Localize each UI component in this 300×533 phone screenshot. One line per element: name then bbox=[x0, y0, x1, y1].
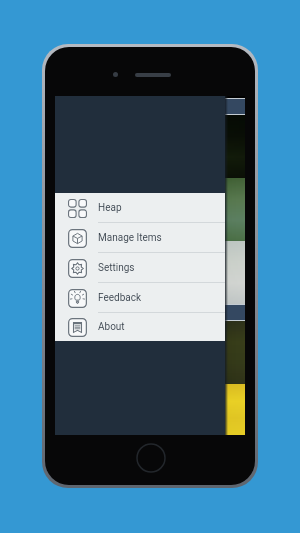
button[interactable]: Heap bbox=[55, 193, 225, 223]
staticText: Manage Items bbox=[98, 232, 162, 244]
staticText: Feedback bbox=[98, 292, 142, 304]
button[interactable]: Lemon bbox=[55, 384, 245, 435]
button[interactable]: Feedback bbox=[55, 283, 225, 313]
button[interactable]: Apple bbox=[55, 321, 245, 384]
button[interactable]: Cabbage bbox=[55, 115, 245, 178]
button[interactable]: Cauliflower bbox=[55, 241, 245, 304]
staticText: Broccoli bbox=[56, 229, 87, 239]
other: Home bbox=[136, 443, 166, 473]
staticText: Cauliflower bbox=[56, 292, 99, 302]
staticText: About bbox=[98, 321, 125, 333]
button[interactable]: Manage Items bbox=[55, 223, 225, 253]
staticText: Settings bbox=[98, 262, 135, 274]
staticText: Heap bbox=[98, 202, 122, 214]
button[interactable]: Broccoli bbox=[55, 178, 245, 241]
button[interactable]: Settings bbox=[55, 253, 225, 283]
button[interactable]: About bbox=[55, 313, 225, 341]
